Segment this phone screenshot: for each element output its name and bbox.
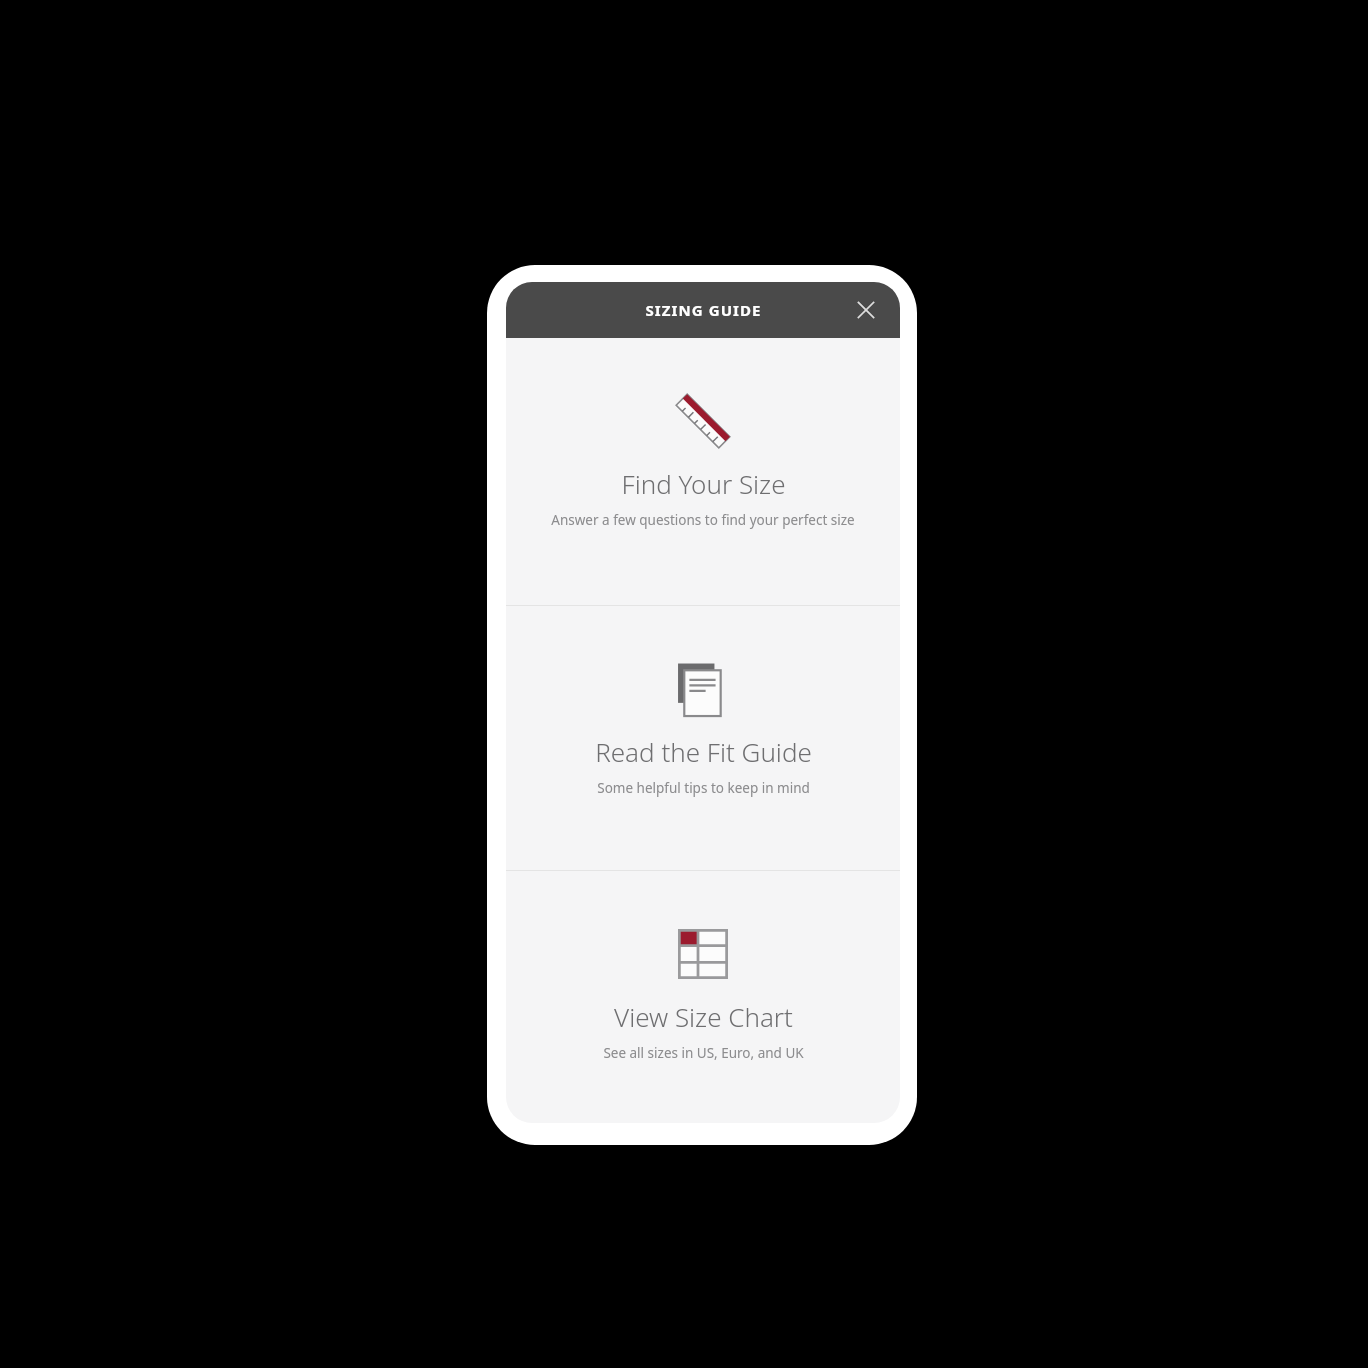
staticText: Answer a few questions to find your perf… — [551, 511, 855, 529]
button[interactable]: Find Your Size — [506, 338, 900, 605]
staticText: See all sizes in US, Euro, and UK — [603, 1044, 804, 1062]
staticText: Some helpful tips to keep in mind — [597, 779, 810, 797]
staticText: SIZING GUIDE — [645, 300, 762, 320]
staticText: Find Your Size — [621, 466, 786, 501]
button[interactable]: View Size Chart — [506, 871, 900, 1123]
staticText: View Size Chart — [614, 999, 793, 1034]
button[interactable]: Close — [844, 288, 888, 332]
button[interactable]: Read the Fit Guide — [506, 606, 900, 870]
staticText: Read the Fit Guide — [595, 734, 812, 769]
